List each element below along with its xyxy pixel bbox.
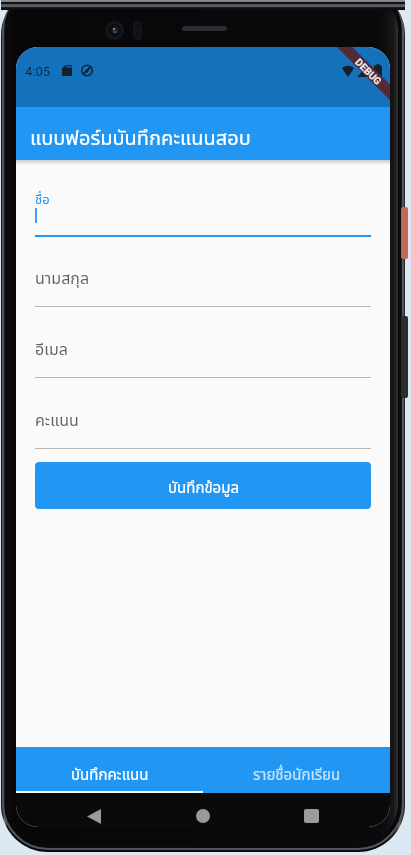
button[interactable]: บันทึกคะแนน [16,747,203,793]
staticText: ชื่อ [35,190,50,210]
button[interactable]: คะแนน [35,401,371,448]
staticText: อีเมล [35,338,68,362]
staticText: นามสกุล [35,267,90,291]
other: Recents [304,809,319,823]
staticText: คะแนน [35,409,79,433]
other: Back [87,809,101,824]
button[interactable]: บันทึกข้อมูล [35,462,371,509]
staticText: บันทึกคะแนน [71,764,149,787]
button[interactable]: รายชื่อนักเรียน [203,747,390,793]
staticText: DEBUG [352,56,383,87]
button[interactable]: อีเมล [35,330,371,377]
staticText: แบบฟอร์มบันทึกคะแนนสอบ [30,124,251,154]
button[interactable]: ชื่อ [35,187,371,236]
other: Home [196,809,210,823]
button[interactable]: นามสกุล [35,259,371,306]
staticText: บันทึกข้อมูล [168,477,239,500]
staticText: รายชื่อนักเรียน [253,764,341,787]
staticText: 4:05 [25,64,51,79]
